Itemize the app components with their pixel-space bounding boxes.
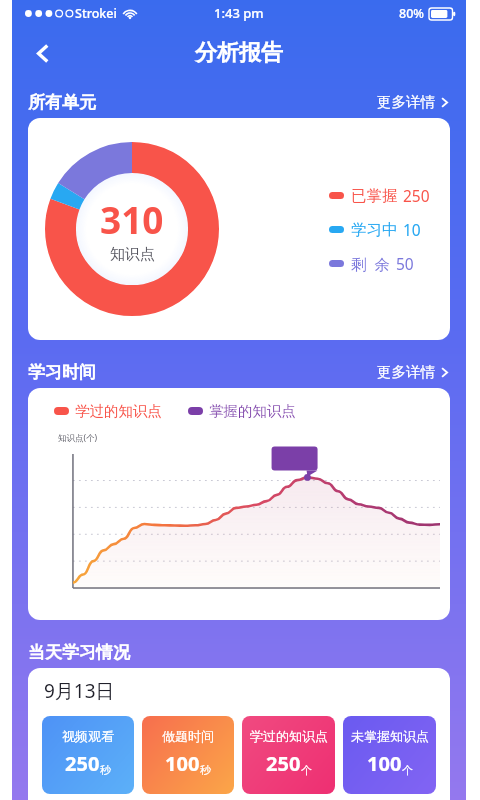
staticText: 250 bbox=[65, 750, 100, 777]
staticText: 个 bbox=[301, 763, 312, 777]
staticText: 做题时间 bbox=[162, 728, 214, 744]
staticText: 学习中 bbox=[351, 220, 398, 240]
staticText: 9月13日 bbox=[44, 678, 115, 704]
staticText: 知识点 bbox=[110, 245, 155, 264]
staticText: Strokei bbox=[75, 5, 117, 22]
staticText: 当天学习情况 bbox=[28, 642, 130, 663]
staticText: 所有单元 bbox=[28, 92, 96, 113]
staticText: 视频观看 bbox=[62, 728, 114, 744]
staticText: 分析报告 bbox=[195, 39, 283, 67]
staticText: 剩 余 bbox=[351, 253, 391, 274]
button[interactable]: 更多详情 bbox=[377, 93, 450, 111]
button[interactable]: 视频观看 bbox=[42, 716, 134, 794]
staticText: 更多详情 bbox=[377, 93, 435, 111]
staticText: 80% bbox=[399, 5, 424, 22]
staticText: 250 bbox=[266, 750, 301, 777]
button[interactable]: 学过的知识点 bbox=[28, 388, 450, 620]
staticText: 250 bbox=[403, 185, 430, 206]
staticText: 学过的知识点 bbox=[75, 402, 162, 420]
button[interactable]: Back bbox=[22, 32, 64, 74]
staticText: 310 bbox=[100, 194, 164, 244]
staticText: 秒 bbox=[100, 763, 111, 777]
staticText: 个 bbox=[402, 763, 413, 777]
staticText: 学习时间 bbox=[28, 362, 96, 383]
button[interactable]: 更多详情 bbox=[377, 363, 450, 381]
staticText: 未掌握知识点 bbox=[351, 728, 429, 744]
staticText: 100 bbox=[367, 750, 402, 777]
staticText: 50 bbox=[396, 253, 414, 274]
staticText: 掌握的知识点 bbox=[209, 402, 296, 420]
button[interactable]: 做题时间 bbox=[142, 716, 234, 794]
staticText: 已掌握 bbox=[351, 186, 398, 206]
staticText: 更多详情 bbox=[377, 363, 435, 381]
staticText: 10 bbox=[403, 219, 421, 240]
button[interactable]: 未掌握知识点 bbox=[343, 716, 436, 794]
staticText: 100 bbox=[165, 750, 200, 777]
button[interactable]: 学过的知识点 bbox=[242, 716, 335, 794]
staticText: 知识点(个) bbox=[58, 432, 98, 444]
staticText: 学过的知识点 bbox=[250, 728, 328, 744]
staticText: 秒 bbox=[200, 763, 211, 777]
button[interactable]: 310 bbox=[28, 118, 450, 340]
staticText: 1:43 pm bbox=[214, 4, 264, 22]
